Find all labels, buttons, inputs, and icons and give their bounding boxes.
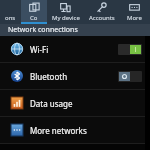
staticText: Accounts <box>89 14 115 22</box>
button[interactable]: ons <box>0 0 21 24</box>
button[interactable]: Wi-Fi <box>0 36 150 62</box>
staticText: Data usage <box>30 98 142 109</box>
button[interactable]: More <box>119 0 150 24</box>
button[interactable]: My device <box>47 0 84 24</box>
button[interactable]: Co <box>21 0 47 24</box>
button[interactable]: Wi-Fi on <box>118 44 142 55</box>
staticText: More networks <box>30 125 142 136</box>
button[interactable]: Bluetooth <box>0 63 150 89</box>
staticText: Bluetooth <box>30 71 118 82</box>
staticText: ons <box>5 14 16 22</box>
button[interactable]: Bluetooth off <box>118 71 142 82</box>
button[interactable]: Accounts <box>84 0 119 24</box>
staticText: More <box>127 14 142 22</box>
staticText: Wi-Fi <box>30 44 118 55</box>
button[interactable]: Data usage <box>0 90 150 116</box>
staticText: Co <box>30 14 38 22</box>
staticText: Network connections <box>8 25 78 35</box>
button[interactable]: More networks <box>0 117 150 143</box>
staticText: My device <box>52 14 80 22</box>
